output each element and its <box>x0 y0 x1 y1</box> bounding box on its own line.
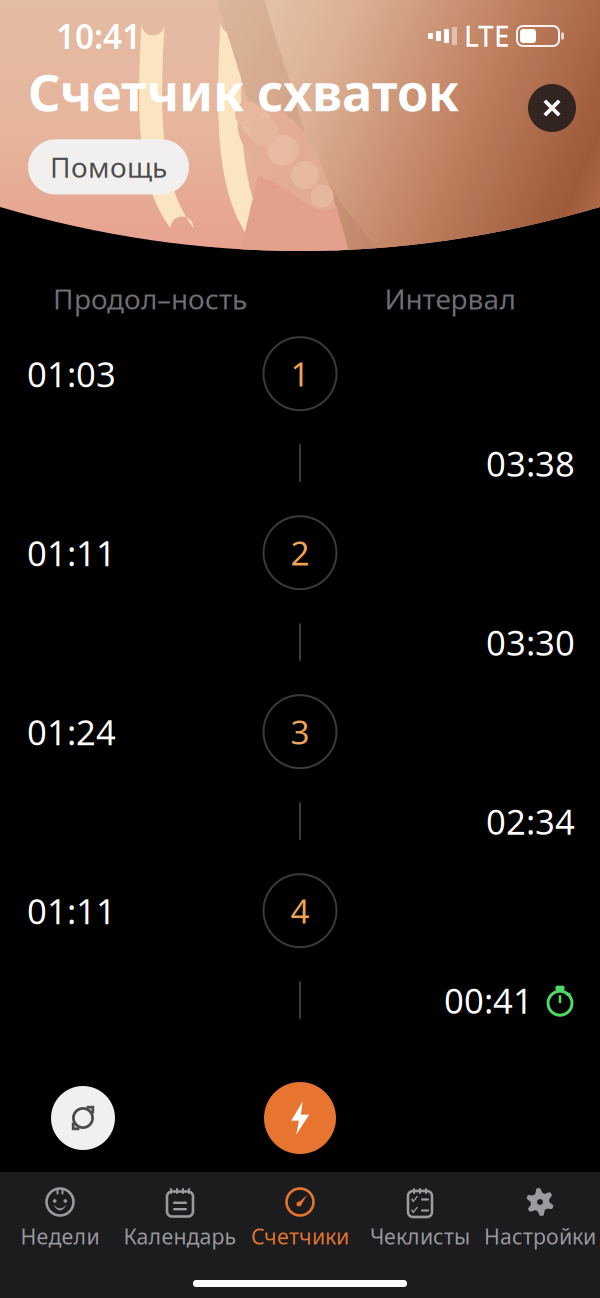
staticText: Счетчики <box>251 1222 349 1250</box>
staticText: LTE <box>464 17 510 55</box>
button[interactable]: Сбросить <box>51 1086 115 1150</box>
button[interactable]: Счетчики <box>240 1185 360 1250</box>
staticText: Недели <box>20 1222 99 1250</box>
staticText: 03:38 <box>486 440 575 486</box>
button[interactable]: Начать схватку <box>264 1082 336 1154</box>
button[interactable]: Недели <box>0 1185 120 1250</box>
staticText: 03:30 <box>486 619 575 665</box>
staticText: Интервал <box>384 280 515 317</box>
button[interactable]: Помощь <box>28 139 189 194</box>
staticText: 01:24 <box>27 709 116 755</box>
staticText: 00:41 <box>444 977 533 1023</box>
staticText: 01:03 <box>27 351 116 397</box>
staticText: 10:41 <box>56 14 141 58</box>
staticText: 01:11 <box>27 530 116 576</box>
staticText: Помощь <box>50 148 167 185</box>
staticText: 3 <box>290 710 309 754</box>
button[interactable]: Закрыть <box>528 84 576 132</box>
staticText: Счетчик схваток <box>28 58 459 125</box>
staticText: Продол–ность <box>53 280 247 317</box>
staticText: 2 <box>290 531 309 575</box>
staticText: 4 <box>290 889 309 933</box>
staticText: 1 <box>290 352 309 396</box>
staticText: Чеклисты <box>370 1222 470 1250</box>
staticText: 02:34 <box>486 798 575 844</box>
staticText: Календарь <box>123 1222 236 1250</box>
staticText: 01:11 <box>27 888 116 934</box>
staticText: Настройки <box>484 1222 596 1250</box>
button[interactable]: Настройки <box>480 1185 600 1250</box>
button[interactable]: Чеклисты <box>360 1185 480 1250</box>
button[interactable]: Календарь <box>120 1185 240 1250</box>
